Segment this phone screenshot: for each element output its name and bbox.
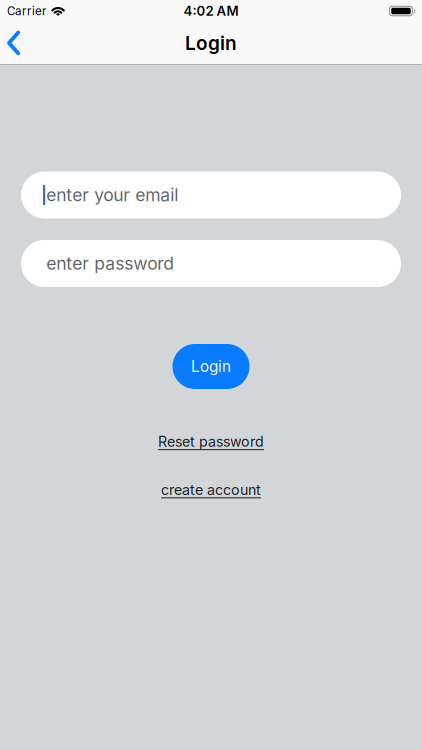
button[interactable]: enter your email <box>21 171 401 218</box>
staticText: Login <box>185 31 237 54</box>
staticText: Carrier <box>7 4 46 18</box>
button[interactable]: Login <box>172 344 249 389</box>
staticText: enter your email <box>46 184 178 206</box>
staticText: Login <box>191 357 231 376</box>
button[interactable]: enter password <box>21 240 401 287</box>
staticText: enter password <box>46 253 174 274</box>
button[interactable] <box>0 22 32 64</box>
staticText: create account <box>161 481 261 498</box>
button[interactable]: create account <box>161 481 261 498</box>
staticText: Reset password <box>158 433 264 450</box>
button[interactable]: Reset password <box>158 433 264 450</box>
staticText: 4:02 AM <box>183 3 238 19</box>
